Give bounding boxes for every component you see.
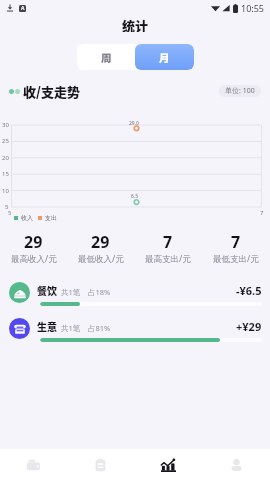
staticText: A [21, 5, 25, 12]
button[interactable]: 生意 [0, 314, 270, 344]
staticText: 7 [260, 209, 264, 217]
button[interactable]: Records [67, 449, 134, 480]
button[interactable]: 月 [135, 44, 194, 70]
staticText: 15 [2, 170, 9, 178]
staticText: 5 [5, 203, 9, 211]
staticText: 10 [2, 187, 9, 195]
staticText: 20 [2, 154, 9, 162]
staticText: 最高收入/元 [11, 253, 57, 263]
button[interactable]: 餐饮 [0, 278, 270, 308]
staticText: 月 [159, 50, 170, 65]
staticText: 10:55 [241, 2, 265, 14]
staticText: 30 [2, 121, 9, 129]
staticText: 占18% [88, 287, 111, 297]
staticText: -¥6.5 [236, 283, 262, 298]
staticText: 最高支出/元 [145, 253, 191, 263]
staticText: 共1笔 [61, 287, 81, 297]
staticText: 最低收入/元 [78, 253, 124, 263]
staticText: 6.5 [131, 193, 139, 200]
staticText: 29 [24, 231, 43, 253]
staticText: 占81% [88, 323, 111, 333]
staticText: 单位: 100 [225, 86, 255, 96]
staticText: 25 [2, 137, 9, 145]
button[interactable]: Wallet [0, 449, 67, 480]
staticText: 7 [163, 231, 173, 253]
staticText: 29.0 [129, 120, 139, 127]
button[interactable]: 周 [77, 44, 135, 70]
staticText: 餐饮 [37, 283, 57, 297]
staticText: 支出 [45, 214, 57, 222]
button[interactable]: Profile [202, 449, 270, 480]
staticText: +¥29 [236, 319, 262, 334]
staticText: 周 [101, 50, 112, 65]
staticText: 收入 [21, 214, 33, 222]
staticText: 7 [231, 231, 241, 253]
button[interactable]: Statistics [134, 449, 202, 480]
staticText: 5 [8, 209, 12, 217]
staticText: 生意 [37, 319, 57, 333]
staticText: 29 [91, 231, 110, 253]
staticText: 最低支出/元 [213, 253, 259, 263]
staticText: 统计 [122, 16, 149, 32]
staticText: 收/支走势 [23, 82, 81, 100]
staticText: 共1笔 [61, 323, 81, 333]
